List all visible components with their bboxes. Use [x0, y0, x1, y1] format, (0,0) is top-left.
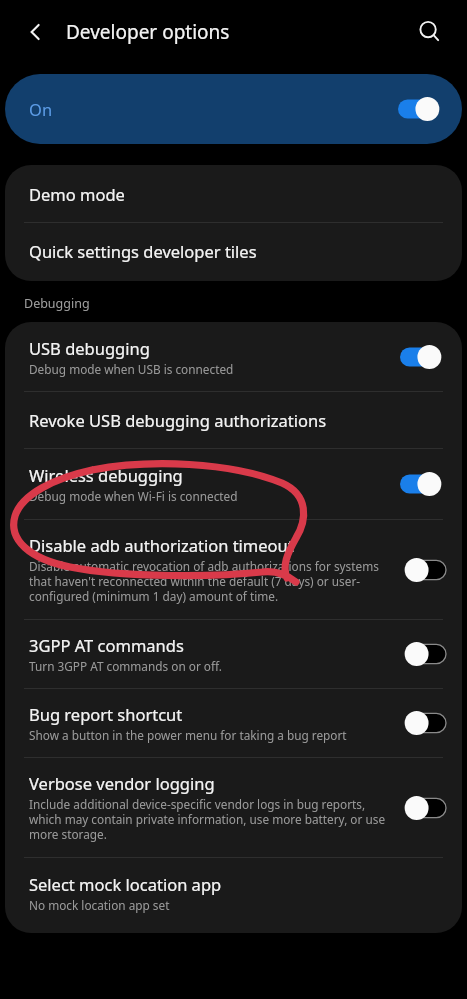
- button[interactable]: On: [5, 74, 462, 144]
- button[interactable]: 3GPP AT commands: [5, 620, 462, 688]
- button[interactable]: Bug report shortcut: [5, 689, 462, 757]
- button[interactable]: Toggle off: [400, 795, 446, 821]
- staticText: 3GPP AT commands: [29, 634, 184, 656]
- staticText: No mock location app set: [29, 897, 170, 913]
- staticText: Debugging: [24, 295, 90, 312]
- button[interactable]: Toggle off: [400, 557, 446, 583]
- staticText: Turn 3GPP AT commands on or off.: [29, 658, 222, 674]
- staticText: Debug mode when Wi-Fi is connected: [29, 488, 238, 504]
- staticText: Quick settings developer tiles: [29, 240, 257, 262]
- button[interactable]: Disable adb authorization timeout: [5, 520, 462, 619]
- staticText: Disable automatic revocation of adb auth…: [29, 558, 386, 605]
- button[interactable]: Demo mode: [5, 165, 462, 222]
- staticText: Show a button in the power menu for taki…: [29, 727, 347, 743]
- staticText: On: [29, 98, 398, 120]
- button[interactable]: Wireless debugging: [5, 449, 462, 519]
- staticText: Developer options: [66, 19, 230, 45]
- button[interactable]: Toggle off: [400, 710, 446, 736]
- staticText: USB debugging: [29, 337, 150, 359]
- button[interactable]: USB debugging: [5, 322, 462, 391]
- button[interactable]: Toggle on: [400, 471, 446, 497]
- button[interactable]: Search: [412, 14, 448, 50]
- button[interactable]: Select mock location app: [5, 858, 462, 933]
- staticText: Bug report shortcut: [29, 703, 183, 725]
- button[interactable]: Back: [18, 14, 54, 50]
- staticText: Disable adb authorization timeout: [29, 534, 294, 556]
- staticText: Revoke USB debugging authorizations: [29, 409, 327, 431]
- staticText: Verbose vendor logging: [29, 772, 215, 794]
- button[interactable]: Toggle on: [400, 344, 446, 370]
- button[interactable]: Verbose vendor logging: [5, 758, 462, 857]
- staticText: Demo mode: [29, 183, 125, 205]
- staticText: Wireless debugging: [29, 464, 183, 486]
- button[interactable]: Quick settings developer tiles: [5, 223, 462, 281]
- staticText: Debug mode when USB is connected: [29, 361, 234, 377]
- button[interactable]: Toggle off: [400, 641, 446, 667]
- staticText: Include additional device-specific vendo…: [29, 796, 386, 843]
- button[interactable]: Toggle on: [398, 96, 444, 122]
- button[interactable]: Revoke USB debugging authorizations: [5, 392, 462, 448]
- staticText: Select mock location app: [29, 873, 222, 895]
